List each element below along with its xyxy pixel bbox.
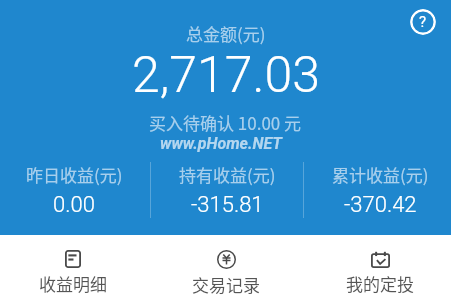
staticText: www.pHome.NET	[160, 134, 282, 153]
other: My plan	[371, 250, 390, 268]
staticText: ?	[419, 13, 427, 31]
staticText: -315.81	[191, 192, 264, 218]
staticText: 0.00	[53, 192, 95, 218]
button[interactable]: 持有收益(元)	[167, 162, 287, 218]
other: Transaction record	[217, 250, 236, 269]
staticText: -370.42	[344, 192, 417, 218]
button[interactable]: My plan	[320, 235, 440, 299]
staticText: 2,717.03	[132, 46, 320, 105]
button[interactable]: Transaction record	[166, 235, 286, 299]
button[interactable]: 累计收益(元)	[320, 162, 440, 218]
button[interactable]: Help	[410, 9, 436, 35]
staticText: 我的定投	[346, 271, 414, 296]
button[interactable]: Earnings detail	[13, 235, 133, 299]
staticText: 昨日收益(元)	[26, 162, 123, 187]
staticText: 交易记录	[192, 272, 260, 297]
staticText: 买入待确认 10.00 元	[149, 110, 302, 135]
staticText: 持有收益(元)	[179, 162, 276, 187]
staticText: 累计收益(元)	[332, 162, 429, 187]
staticText: 总金额(元)	[186, 21, 266, 46]
staticText: 收益明细	[39, 271, 107, 296]
button[interactable]: 昨日收益(元)	[14, 162, 134, 218]
other: Earnings detail	[65, 250, 81, 268]
